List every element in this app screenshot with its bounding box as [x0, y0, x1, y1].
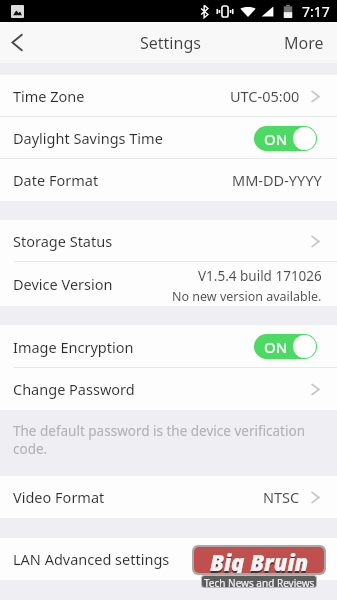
button[interactable]: Time Zone — [0, 75, 337, 117]
button[interactable]: On — [254, 126, 317, 151]
staticText: Video Format — [13, 487, 105, 507]
staticText: NTSC — [263, 487, 300, 507]
staticText: Change Password — [13, 379, 135, 399]
staticText: The default password is the device verif… — [13, 422, 305, 440]
button[interactable]: More — [270, 22, 337, 63]
staticText: Settings — [140, 32, 201, 54]
button[interactable]: Storage Status — [0, 220, 337, 262]
button[interactable]: LAN Advanced settings — [0, 538, 337, 580]
button[interactable]: Image Encryption — [0, 325, 337, 368]
staticText: ON — [264, 129, 288, 149]
button[interactable]: On — [254, 334, 317, 359]
button[interactable]: Device Version — [0, 262, 337, 306]
staticText: 7:17 — [302, 2, 330, 21]
staticText: MM-DD-YYYY — [232, 170, 322, 190]
staticText: code. — [13, 440, 48, 458]
staticText: No new version available. — [172, 288, 322, 305]
button[interactable]: Video Format — [0, 476, 337, 518]
staticText: Time Zone — [13, 86, 85, 106]
staticText: LAN Advanced settings — [13, 549, 170, 569]
button[interactable]: Change Password — [0, 368, 337, 410]
staticText: ON — [264, 337, 288, 357]
staticText: Big Bruin — [210, 549, 309, 573]
staticText: Device Version — [13, 274, 113, 294]
button[interactable]: Back — [0, 22, 34, 63]
staticText: V1.5.4 build 171026 — [198, 267, 322, 285]
staticText: Storage Status — [13, 231, 113, 251]
button[interactable]: Daylight Savings Time — [0, 117, 337, 159]
staticText: More — [284, 32, 324, 54]
staticText: Image Encryption — [13, 337, 134, 357]
button[interactable]: Date Format — [0, 159, 337, 201]
staticText: Big Bruin — [210, 547, 309, 573]
staticText: UTC-05:00 — [230, 86, 300, 106]
staticText: Tech News and Reviews — [204, 576, 315, 587]
staticText: Daylight Savings Time — [13, 128, 163, 148]
staticText: Date Format — [13, 170, 99, 190]
